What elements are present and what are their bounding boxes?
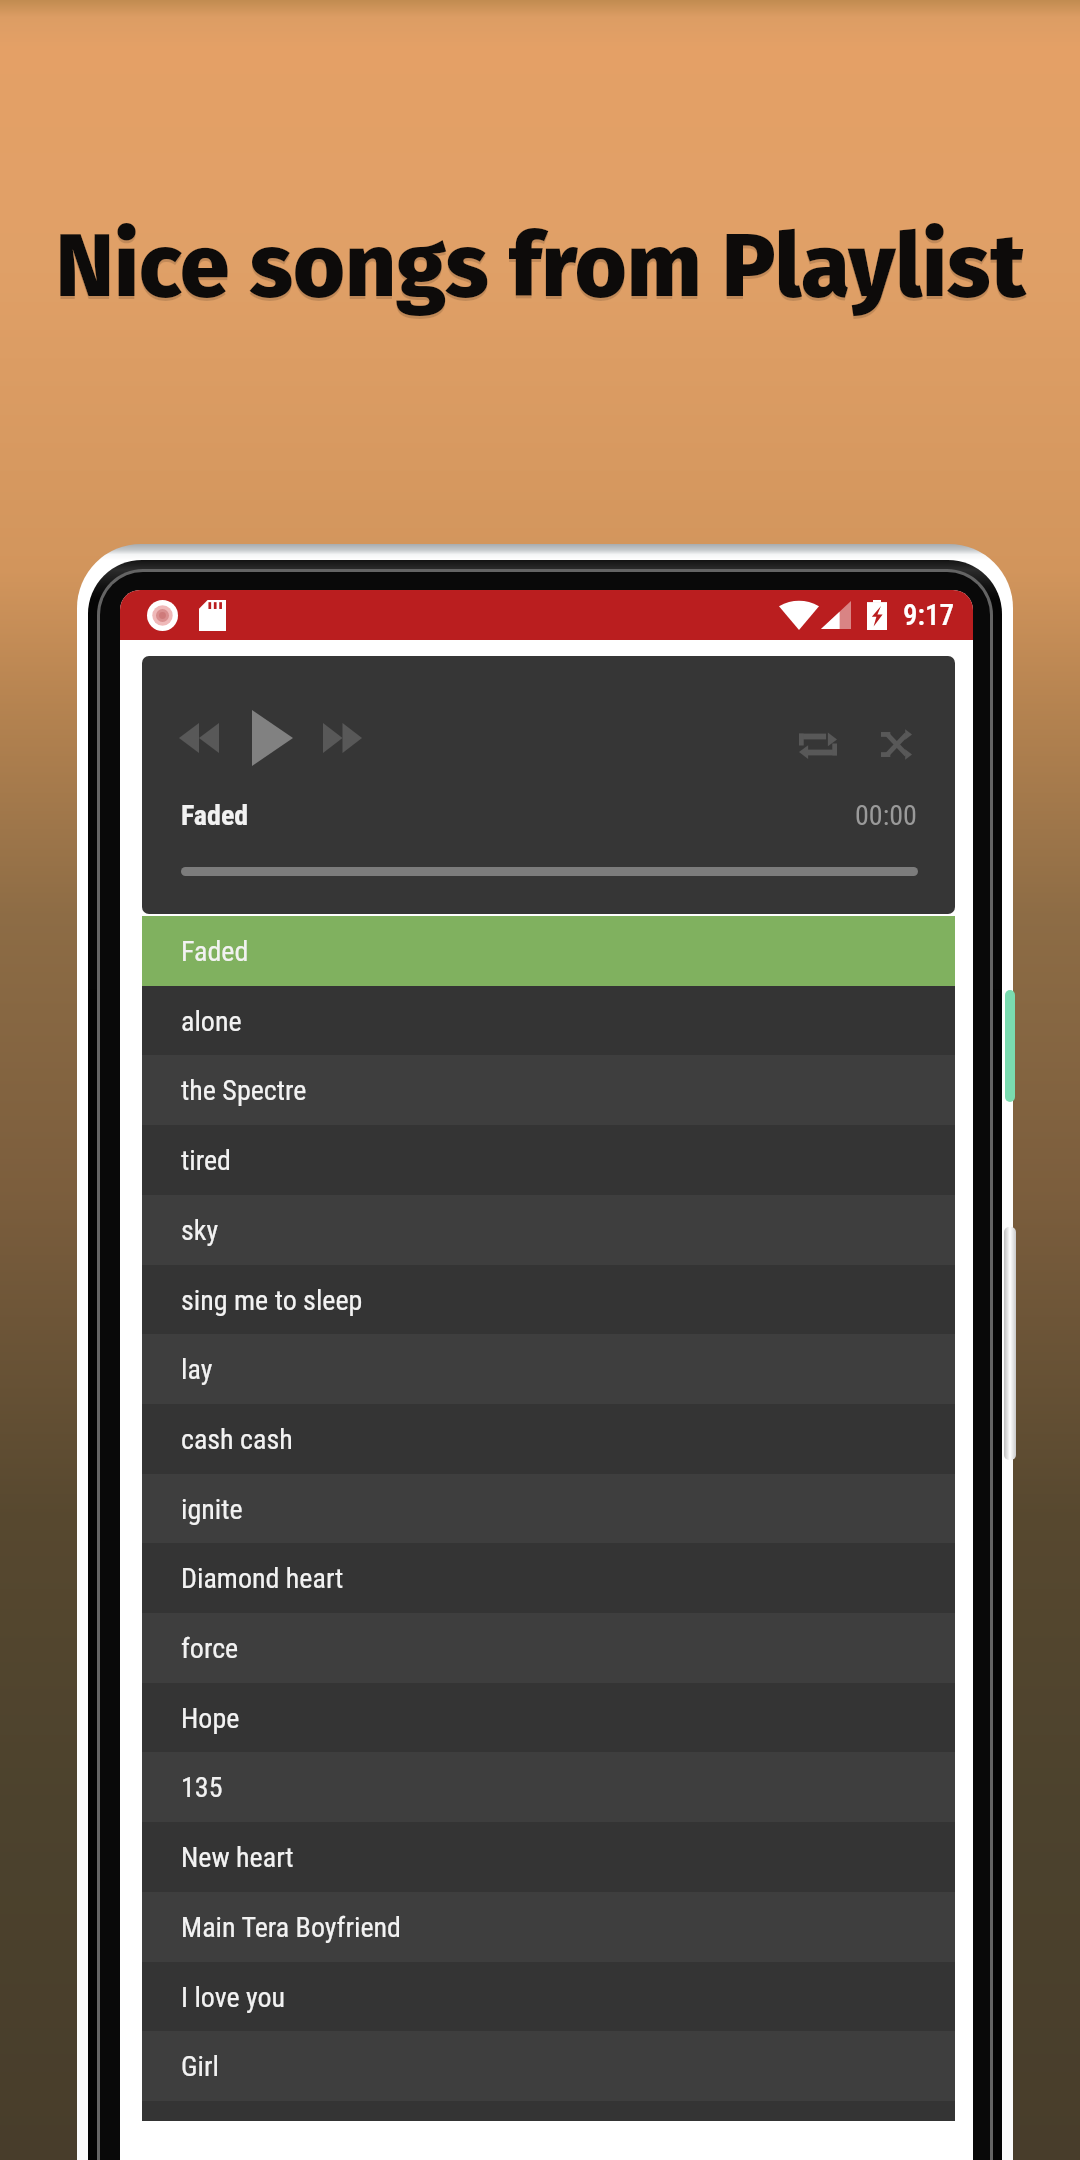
staticText: 9:17 xyxy=(903,598,955,632)
button[interactable]: Shuffle xyxy=(868,716,924,772)
button[interactable]: Play xyxy=(238,704,306,772)
staticText: sing me to sleep xyxy=(181,1284,363,1317)
button[interactable]: alone xyxy=(142,986,955,1056)
button[interactable]: Main Tera Boyfriend xyxy=(142,1892,955,1962)
button[interactable]: Repeat xyxy=(790,716,846,772)
button[interactable]: ignite xyxy=(142,1474,955,1544)
staticText: New heart xyxy=(181,1841,294,1874)
button[interactable]: Next xyxy=(310,706,374,770)
staticText: force xyxy=(181,1632,239,1665)
staticText: 135 xyxy=(181,1771,223,1804)
staticText: Diamond heart xyxy=(181,1562,344,1595)
button[interactable]: I love you xyxy=(142,1962,955,2032)
staticText: cash cash xyxy=(181,1423,293,1456)
button[interactable]: sing me to sleep xyxy=(142,1265,955,1335)
button[interactable]: Diamond heart xyxy=(142,1543,955,1613)
staticText: Nice songs from Playlist xyxy=(55,213,1026,320)
button[interactable]: 135 xyxy=(142,1752,955,1822)
button[interactable]: force xyxy=(142,1613,955,1683)
staticText: ignite xyxy=(181,1493,243,1526)
button[interactable]: Faded xyxy=(142,916,955,986)
staticText: lay xyxy=(181,1353,213,1386)
button[interactable]: the Spectre xyxy=(142,1055,955,1125)
staticText: Hope xyxy=(181,1702,240,1735)
button[interactable]: tired xyxy=(142,1125,955,1195)
staticText: I love you xyxy=(181,1981,286,2014)
staticText: Main Tera Boyfriend xyxy=(181,1911,401,1944)
staticText: tired xyxy=(181,1144,231,1177)
button[interactable]: sky xyxy=(142,1195,955,1265)
staticText: Girl xyxy=(181,2050,219,2083)
staticText: sky xyxy=(181,1214,219,1247)
button[interactable]: Volume button xyxy=(1004,1227,1016,1460)
staticText: alone xyxy=(181,1005,242,1038)
staticText: the Spectre xyxy=(181,1074,307,1107)
button[interactable]: Girl xyxy=(142,2031,955,2101)
staticText: Faded xyxy=(181,799,249,832)
button[interactable]: Hope xyxy=(142,1683,955,1753)
staticText: 00:00 xyxy=(855,799,917,832)
button[interactable]: New heart xyxy=(142,1822,955,1892)
staticText: Faded xyxy=(181,935,249,968)
button[interactable]: lay xyxy=(142,1334,955,1404)
button[interactable]: Power button xyxy=(1005,990,1015,1102)
staticText: Nice songs from Playlist xyxy=(55,216,1026,323)
button[interactable]: Previous xyxy=(167,706,231,770)
button[interactable]: cash cash xyxy=(142,1404,955,1474)
